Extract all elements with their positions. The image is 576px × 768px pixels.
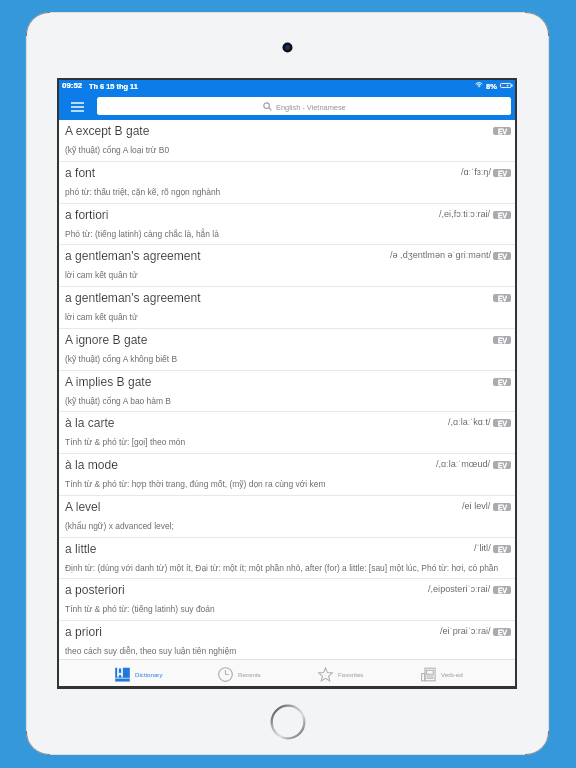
staticText: theo cách suy diễn, theo suy luận tiên n… [65, 646, 237, 655]
staticText: a gentleman's agreement [65, 249, 201, 262]
staticText: 09:52 [62, 81, 83, 90]
staticText: A level [65, 500, 101, 513]
staticText: /ˈlitl/ [474, 543, 491, 553]
staticText: Favorites [338, 671, 364, 678]
staticText: Th 6 15 thg 11 [89, 82, 138, 90]
staticText: Dictionary [135, 671, 163, 678]
staticText: EV [498, 128, 507, 135]
staticText: (kỹ thuật) cổng A loại trừ B0 [65, 145, 170, 154]
button[interactable]: Verb-ed [391, 661, 492, 688]
staticText: EV [498, 337, 507, 344]
staticText: EV [498, 504, 507, 511]
staticText: Định từ: (dùng với danh từ) một ít, Đại … [65, 563, 499, 572]
staticText: à la mode [65, 458, 118, 471]
staticText: Tính từ & phó từ: hợp thời trang, đúng m… [65, 479, 326, 488]
staticText: à la carte [65, 416, 115, 429]
staticText: EV [498, 629, 507, 636]
button[interactable]: A implies B gate [59, 371, 515, 412]
button[interactable]: English - Vietnamese [97, 97, 511, 115]
staticText: a little [65, 542, 97, 555]
staticText: 8% [486, 82, 497, 90]
staticText: Tính từ & phó từ: [gọi] theo món [65, 437, 186, 446]
staticText: a gentleman's agreement [65, 291, 201, 304]
staticText: EV [498, 462, 507, 469]
button[interactable]: Recents [189, 661, 290, 688]
staticText: (khẩu ngữ) x advanced level; [65, 521, 174, 530]
staticText: EV [498, 379, 507, 386]
staticText: /,ɑːlaːˈkɑːt/ [448, 417, 491, 427]
button[interactable]: a gentleman's agreement [59, 245, 515, 287]
staticText: EV [498, 420, 507, 427]
staticText: EV [498, 587, 507, 594]
staticText: /ei levl/ [462, 501, 491, 511]
button[interactable]: a font [59, 162, 515, 204]
staticText: English - Vietnamese [276, 103, 346, 111]
button[interactable]: A except B gate [59, 120, 515, 162]
button[interactable]: a priori [59, 621, 515, 659]
staticText: lời cam kết quân tử [65, 270, 138, 279]
staticText: Phó từ: (tiếng latinh) càng chắc là, hẳn… [65, 229, 219, 238]
button[interactable]: A ignore B gate [59, 329, 515, 371]
staticText: a priori [65, 625, 102, 638]
staticText: Tính từ & phó từ: (tiếng latinh) suy đoá… [65, 604, 215, 613]
staticText: EV [498, 212, 507, 219]
staticText: EV [498, 170, 507, 177]
staticText: EV [498, 546, 507, 553]
button[interactable]: a posteriori [59, 579, 515, 621]
button[interactable]: A level [59, 496, 515, 538]
staticText: Verb-ed [441, 671, 463, 678]
staticText: /ə ,dʒentlmən əˈgriːmənt/ [390, 250, 491, 260]
button[interactable]: a fortiori [59, 204, 515, 245]
staticText: A except B gate [65, 124, 150, 137]
staticText: (kỹ thuật) cổng A bao hàm B [65, 396, 171, 405]
staticText: lời cam kết quân tử [65, 312, 138, 321]
staticText: (kỹ thuật) cổng A không biết B [65, 354, 178, 363]
staticText: a posteriori [65, 583, 125, 596]
staticText: /ɑːˈfɜːŋ/ [461, 167, 491, 177]
button[interactable]: Favorites [290, 661, 391, 688]
button[interactable]: à la mode [59, 454, 515, 496]
staticText: /eiˈpraiˈɔːrai/ [440, 626, 491, 636]
button[interactable]: à la carte [59, 412, 515, 454]
staticText: Recents [238, 671, 261, 678]
staticText: a fortiori [65, 208, 109, 221]
button[interactable]: Open navigation menu [59, 93, 95, 120]
staticText: A ignore B gate [65, 333, 148, 346]
staticText: /,ɑːlaːˈmœud/ [436, 459, 491, 469]
button[interactable]: a little [59, 538, 515, 579]
staticText: /,eiposteriˈɔːrai/ [428, 584, 491, 594]
staticText: phó từ: thấu triệt, cặn kẽ, rõ ngọn nghà… [65, 187, 221, 196]
staticText: EV [498, 253, 507, 260]
button[interactable]: Dictionary [88, 661, 189, 688]
staticText: A implies B gate [65, 375, 152, 388]
button[interactable]: a gentleman's agreement [59, 287, 515, 329]
staticText: /,ei,fɔːtiːɔːrai/ [439, 209, 491, 219]
staticText: EV [498, 295, 507, 302]
staticText: a font [65, 166, 96, 179]
